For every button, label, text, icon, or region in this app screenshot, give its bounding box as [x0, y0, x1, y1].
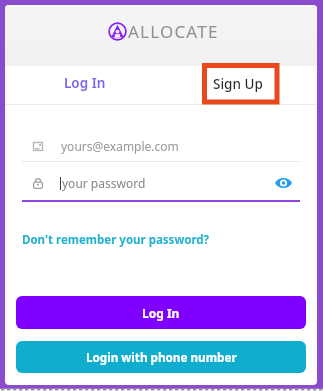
- button[interactable]: Log In: [5, 66, 161, 104]
- button[interactable]: Don't remember your password?: [22, 232, 210, 248]
- button[interactable]: Log In: [16, 296, 306, 329]
- button[interactable]: Show password: [272, 172, 294, 194]
- staticText: ALLOCATE: [128, 20, 219, 43]
- button[interactable]: Login with phone number: [16, 341, 306, 373]
- staticText: Login with phone number: [86, 349, 237, 365]
- staticText: yours@example.com: [61, 138, 179, 154]
- staticText: Log In: [64, 74, 106, 92]
- staticText: Sign Up: [213, 75, 263, 93]
- button[interactable]: Sign Up: [161, 66, 317, 104]
- staticText: Don't remember your password?: [22, 232, 210, 248]
- staticText: your password: [62, 175, 146, 191]
- staticText: Log In: [142, 305, 180, 321]
